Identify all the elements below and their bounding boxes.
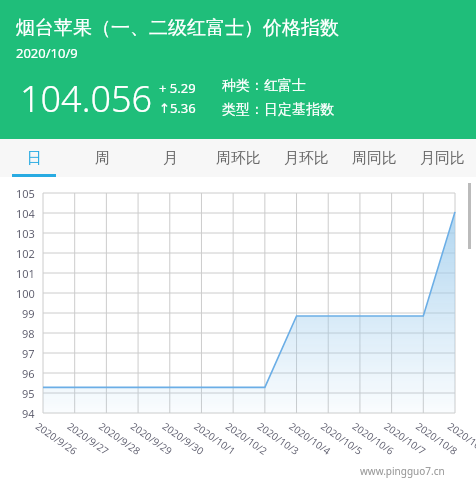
staticText: 月同比	[420, 149, 465, 168]
button[interactable]: 周同比	[340, 139, 408, 177]
staticText: 类型：日定基指数	[222, 101, 334, 119]
staticText: 月环比	[284, 149, 329, 168]
staticText: 104.056	[20, 74, 153, 123]
staticText: 周	[95, 149, 110, 168]
staticText: 周同比	[352, 149, 397, 168]
staticText: 2020/10/9	[16, 44, 78, 62]
button[interactable]: 月环比	[272, 139, 340, 177]
staticText: ↑5.36	[159, 99, 196, 117]
staticText: 烟台苹果（一、二级红富士）价格指数	[16, 16, 339, 40]
button[interactable]: 日	[0, 139, 68, 177]
staticText: + 5.29	[159, 79, 196, 97]
staticText: 月	[163, 149, 178, 168]
button[interactable]: 周环比	[204, 139, 272, 177]
button[interactable]: 周	[68, 139, 136, 177]
staticText: 周环比	[216, 149, 261, 168]
button[interactable]: 月同比	[408, 139, 476, 177]
staticText: 种类：红富士	[222, 77, 306, 95]
staticText: 日	[27, 149, 42, 168]
button[interactable]: 月	[136, 139, 204, 177]
